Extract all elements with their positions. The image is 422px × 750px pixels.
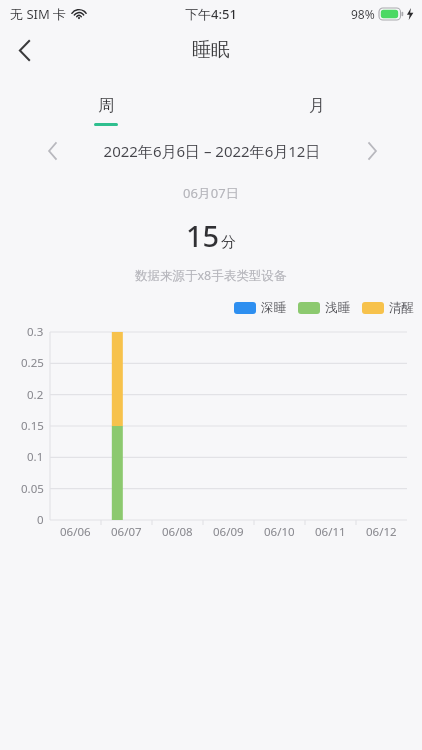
button[interactable]: 清醒 <box>362 300 414 316</box>
staticText: 浅睡 <box>325 300 350 316</box>
staticText: 0.2 <box>27 387 44 403</box>
staticText: 数据来源于x8手表类型设备 <box>135 267 287 284</box>
staticText: 06/07 <box>111 524 142 540</box>
button[interactable]: Back <box>0 28 48 72</box>
staticText: 无 SIM 卡 <box>10 5 67 23</box>
staticText: 06/10 <box>264 524 295 540</box>
staticText: 2022年6月6日 – 2022年6月12日 <box>68 141 356 161</box>
staticText: 06/12 <box>366 524 397 540</box>
staticText: 06/11 <box>315 524 346 540</box>
staticText: 0.1 <box>27 449 44 465</box>
staticText: 0.25 <box>21 355 44 371</box>
button[interactable]: Next week <box>356 136 388 166</box>
staticText: 06月07日 <box>183 184 239 202</box>
staticText: 分 <box>221 233 236 252</box>
button[interactable]: 浅睡 <box>298 300 350 316</box>
staticText: 清醒 <box>389 300 414 316</box>
staticText: 0 <box>37 512 44 528</box>
staticText: 0.05 <box>21 481 44 497</box>
staticText: 月 <box>309 96 325 116</box>
staticText: 98% <box>351 6 375 22</box>
staticText: 0.3 <box>27 324 44 340</box>
staticText: 下午4:51 <box>185 5 237 23</box>
staticText: 06/09 <box>213 524 244 540</box>
staticText: 15 <box>186 216 220 255</box>
staticText: 周 <box>98 96 114 116</box>
button[interactable]: 周 <box>0 94 211 128</box>
staticText: 深睡 <box>261 300 286 316</box>
staticText: 0.15 <box>21 418 44 434</box>
staticText: 06/06 <box>60 524 91 540</box>
staticText: 睡眠 <box>192 38 230 62</box>
staticText: 06/08 <box>162 524 193 540</box>
button[interactable]: 月 <box>211 94 422 128</box>
button[interactable]: Previous week <box>36 136 68 166</box>
button[interactable]: 深睡 <box>234 300 286 316</box>
